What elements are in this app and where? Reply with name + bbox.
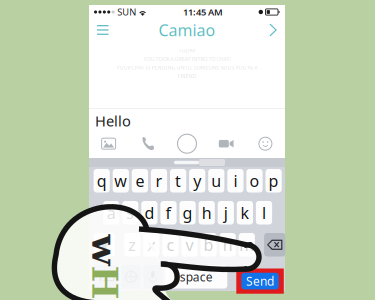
staticText: f xyxy=(165,202,171,223)
button[interactable]: q xyxy=(94,169,110,192)
staticText: YOUR CHAT IS PENDING UNTIL SOMEONE ADDS … xyxy=(116,64,257,71)
button[interactable]: w xyxy=(113,169,129,192)
staticText: v xyxy=(185,234,193,255)
staticText: SUN xyxy=(117,6,136,18)
staticText: d xyxy=(144,202,154,223)
button[interactable]: Camera xyxy=(167,134,207,154)
staticText: e xyxy=(135,170,144,191)
button[interactable]: e xyxy=(132,169,148,192)
button[interactable]: Photos xyxy=(89,134,128,154)
button[interactable]: x xyxy=(143,233,159,256)
button[interactable]: p xyxy=(265,169,282,192)
staticText: Camiao xyxy=(158,19,215,41)
button[interactable]: Shift xyxy=(94,233,115,256)
button[interactable]: f xyxy=(160,201,177,224)
button[interactable]: k xyxy=(237,201,253,224)
staticText: l xyxy=(262,202,266,223)
staticText: a xyxy=(107,202,116,223)
button[interactable]: Send xyxy=(236,268,284,294)
button[interactable]: d xyxy=(141,201,157,224)
button[interactable]: h xyxy=(199,201,215,224)
button[interactable]: m xyxy=(239,233,255,256)
button[interactable]: v xyxy=(181,233,198,256)
button[interactable]: Dictate xyxy=(143,265,162,288)
staticText: r xyxy=(155,170,162,191)
staticText: c xyxy=(166,234,174,255)
button[interactable]: Call xyxy=(128,134,167,154)
staticText: space xyxy=(180,269,213,285)
staticText: x xyxy=(147,234,155,255)
staticText: YOU TOOK A GREAT INTRO TO CHAT! xyxy=(143,55,230,63)
staticText: H xyxy=(103,246,137,288)
staticText: g xyxy=(183,202,193,223)
button[interactable]: n xyxy=(220,233,236,256)
button[interactable]: j xyxy=(218,201,234,224)
button[interactable]: g xyxy=(179,201,196,224)
staticText: w xyxy=(72,246,103,288)
staticText: 123 xyxy=(97,270,115,284)
button[interactable]: y xyxy=(189,169,205,192)
button[interactable]: 123 xyxy=(94,265,119,288)
button[interactable]: s xyxy=(122,201,138,224)
button[interactable]: l xyxy=(256,201,272,224)
staticText: Hello xyxy=(95,111,131,130)
button[interactable]: z xyxy=(124,233,140,256)
button[interactable]: b xyxy=(200,233,217,256)
button[interactable]: space xyxy=(165,265,227,288)
button[interactable]: Delete xyxy=(264,233,285,256)
staticText: TODAY xyxy=(178,47,195,54)
staticText: n xyxy=(223,234,233,255)
button[interactable]: a xyxy=(103,201,119,224)
staticText: h xyxy=(202,202,212,223)
staticText: u xyxy=(211,170,221,191)
button[interactable]: Stickers xyxy=(246,134,285,154)
staticText: k xyxy=(240,202,249,223)
button[interactable]: o xyxy=(246,169,263,192)
button[interactable]: t xyxy=(170,169,186,192)
button[interactable]: Next xyxy=(249,19,277,41)
staticText: j xyxy=(224,202,228,223)
button[interactable]: Menu xyxy=(97,19,125,41)
staticText: w xyxy=(114,170,127,191)
staticText: q xyxy=(97,170,107,191)
button[interactable]: r xyxy=(151,169,167,192)
staticText: FRIEND xyxy=(177,72,196,79)
staticText: z xyxy=(128,234,136,255)
button[interactable]: c xyxy=(162,233,178,256)
staticText: i xyxy=(233,170,237,191)
button[interactable]: u xyxy=(208,169,224,192)
staticText: p xyxy=(269,170,279,191)
staticText: m xyxy=(239,234,254,255)
staticText: o xyxy=(249,170,259,191)
staticText: y xyxy=(193,170,201,191)
staticText: b xyxy=(204,234,214,255)
staticText: 11:45 AM xyxy=(183,6,223,18)
button[interactable]: Video xyxy=(207,134,246,154)
staticText: Send xyxy=(246,273,274,289)
button[interactable]: i xyxy=(227,169,243,192)
staticText: s xyxy=(126,202,134,223)
staticText: t xyxy=(175,170,181,191)
